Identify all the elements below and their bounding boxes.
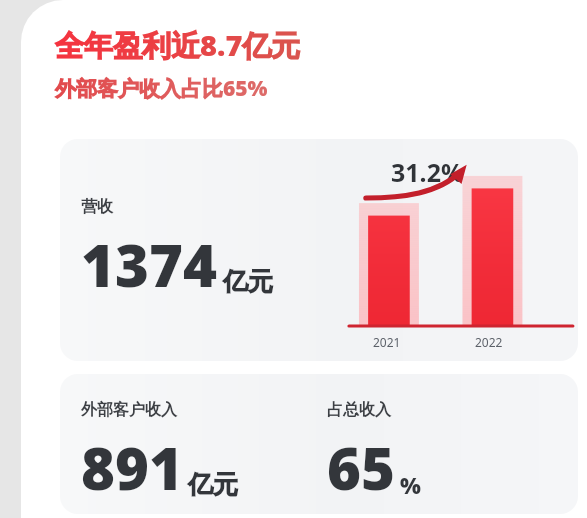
staticText: 外部客户收入	[81, 400, 177, 420]
staticText: 亿元	[188, 469, 238, 500]
staticText: 1374	[81, 225, 217, 304]
button[interactable]: 营收	[60, 139, 578, 361]
staticText: 亿元	[223, 266, 273, 297]
button[interactable]: 外部客户收入	[60, 374, 578, 514]
staticText: 31.2%	[391, 155, 464, 189]
other: Revenue growth bar chart	[349, 170, 574, 330]
staticText: 2022	[475, 334, 503, 350]
staticText: 外部客户收入占比65%	[55, 74, 268, 103]
staticText: 占总收入	[327, 400, 391, 420]
staticText: 全年盈利近8.7亿元	[55, 25, 301, 65]
staticText: 891	[81, 428, 183, 507]
staticText: %	[400, 470, 421, 500]
staticText: 65	[327, 428, 395, 507]
staticText: 营收	[81, 197, 113, 217]
staticText: 2021	[373, 334, 401, 350]
